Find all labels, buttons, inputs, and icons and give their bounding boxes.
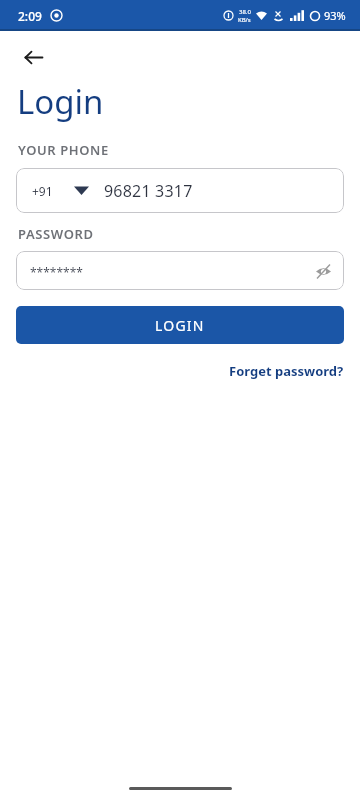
button[interactable]: Forget password? xyxy=(229,362,344,380)
staticText: 38.0 xyxy=(239,8,251,16)
staticText: 2:09 xyxy=(18,8,42,24)
staticText: 96821 3317 xyxy=(104,180,193,202)
button[interactable]: ******** xyxy=(16,251,344,290)
staticText: 93% xyxy=(324,8,346,23)
staticText: YOUR PHONE xyxy=(18,141,109,159)
staticText: ******** xyxy=(30,264,83,280)
staticText: Forget password? xyxy=(229,362,344,380)
staticText: KB/s xyxy=(238,16,251,24)
staticText: PASSWORD xyxy=(18,225,94,243)
button[interactable]: LOGIN xyxy=(16,306,344,344)
staticText: +91 xyxy=(32,183,53,199)
button[interactable] xyxy=(14,37,54,77)
staticText: LOGIN xyxy=(155,316,205,335)
button[interactable] xyxy=(306,254,340,288)
button[interactable]: +91 xyxy=(16,168,344,213)
staticText: Login xyxy=(17,79,104,124)
